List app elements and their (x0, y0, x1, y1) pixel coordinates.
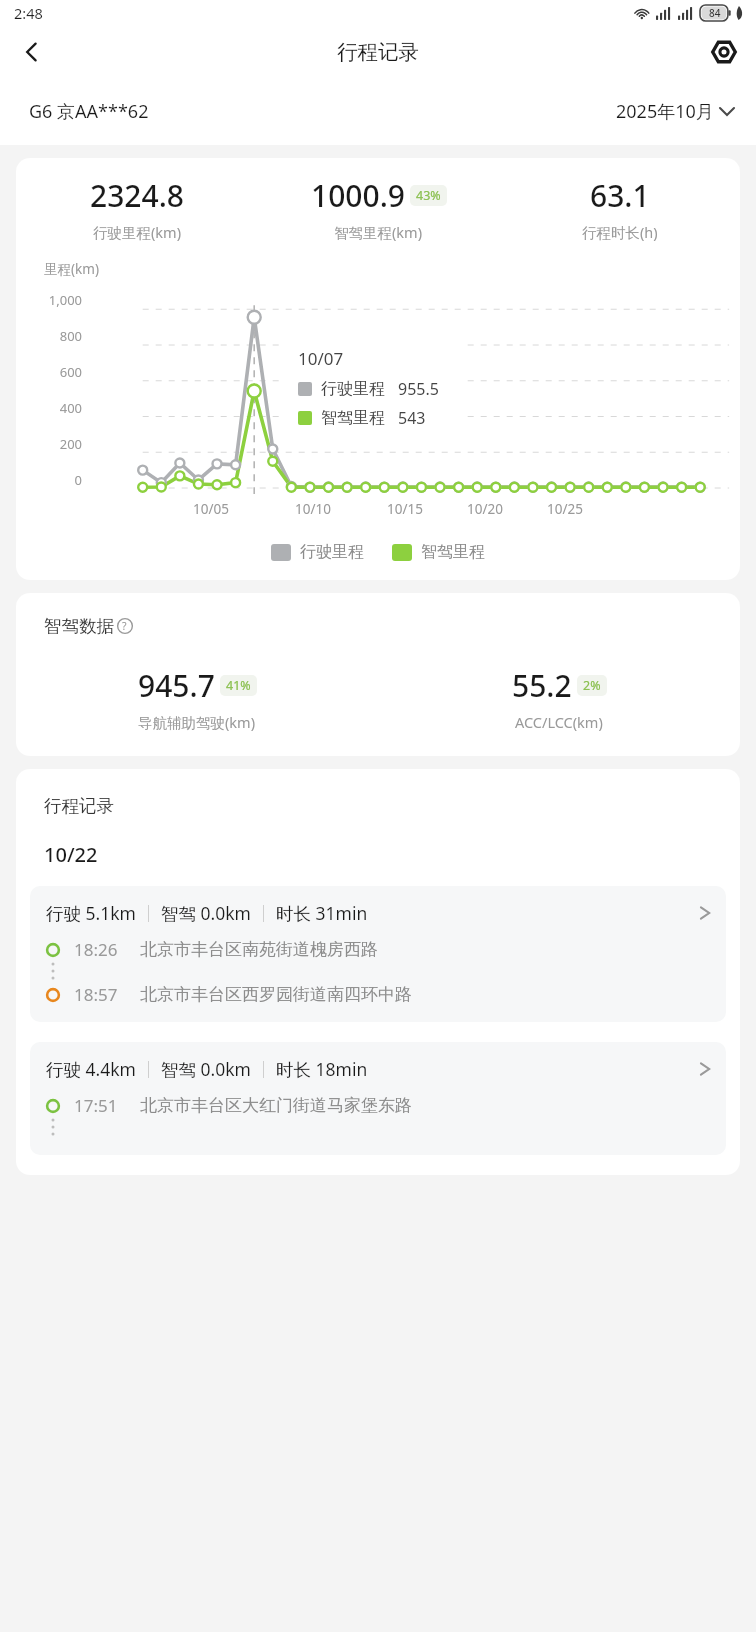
staticText: ? (122, 619, 127, 633)
staticText: 10/15 (387, 500, 423, 518)
staticText: 400 (59, 399, 82, 417)
staticText: 行驶里程 (321, 379, 385, 399)
staticText: 行驶 5.1km (46, 901, 136, 925)
staticText: 智驾 0.0km (161, 1057, 251, 1081)
staticText: 智驾里程(km) (334, 222, 423, 242)
staticText: 1000.9 (311, 175, 405, 216)
staticText: 10/07 (298, 347, 344, 370)
staticText: 行驶里程(km) (93, 222, 182, 242)
staticText: G6 京AA***62 (29, 99, 149, 124)
staticText: 2:48 (14, 3, 43, 23)
staticText: 北京市丰台区南苑街道槐房西路 (140, 939, 378, 960)
staticText: 800 (59, 327, 82, 345)
staticText: 41% (226, 677, 251, 694)
staticText: 18:57 (74, 983, 118, 1006)
staticText: 智驾 0.0km (161, 901, 251, 925)
staticText: 84 (709, 6, 721, 20)
staticText: 导航辅助驾驶(km) (138, 712, 256, 732)
staticText: 2% (583, 677, 601, 694)
staticText: 行驶里程 (300, 542, 364, 562)
staticText: 北京市丰台区西罗园街道南四环中路 (140, 984, 412, 1005)
staticText: 10/20 (467, 500, 503, 518)
staticText: 北京市丰台区大红门街道马家堡东路 (140, 1095, 412, 1116)
button[interactable]: Settings (700, 28, 748, 76)
button[interactable]: 行驶 4.4km (30, 1042, 726, 1155)
staticText: 955.5 (398, 378, 439, 400)
staticText: ACC/LCC(km) (515, 712, 603, 732)
staticText: 里程(km) (44, 260, 99, 278)
staticText: 945.7 (138, 665, 215, 706)
staticText: 智驾里程 (421, 542, 485, 562)
staticText: 17:51 (74, 1094, 118, 1117)
staticText: 行程记录 (337, 39, 419, 65)
button[interactable]: Back (8, 28, 56, 76)
staticText: 智驾里程 (321, 408, 385, 428)
staticText: 63.1 (590, 175, 650, 216)
staticText: 543 (398, 407, 426, 429)
staticText: 2324.8 (90, 175, 184, 216)
staticText: 200 (59, 435, 82, 453)
button[interactable]: 2025年10月 (616, 99, 734, 124)
staticText: 时长 31min (276, 901, 368, 925)
staticText: 55.2 (512, 665, 572, 706)
staticText: 600 (59, 363, 82, 381)
button[interactable]: 行驶 5.1km (30, 886, 726, 1022)
staticText: 行驶 4.4km (46, 1057, 136, 1081)
staticText: 时长 18min (276, 1057, 368, 1081)
staticText: 10/25 (547, 500, 583, 518)
staticText: 智驾数据 (44, 615, 114, 637)
staticText: 行程时长(h) (582, 222, 658, 242)
staticText: 18:26 (74, 938, 118, 961)
staticText: 2025年10月 (616, 99, 714, 124)
staticText: 10/22 (44, 841, 98, 868)
staticText: 10/10 (295, 500, 331, 518)
staticText: 1,000 (48, 291, 82, 309)
button[interactable]: 智驾数据 (44, 615, 138, 637)
staticText: 43% (416, 187, 441, 204)
staticText: 0 (74, 471, 82, 489)
staticText: 10/05 (193, 500, 229, 518)
staticText: 行程记录 (44, 795, 114, 817)
